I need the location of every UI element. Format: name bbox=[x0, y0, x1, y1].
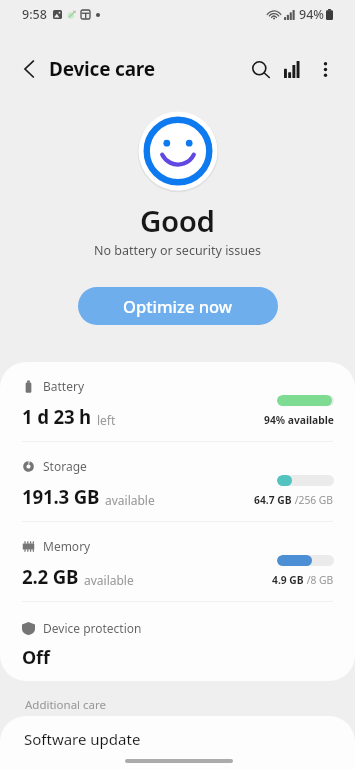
staticText: Storage bbox=[43, 458, 87, 474]
staticText: /8 GB bbox=[304, 573, 334, 587]
staticText: Good bbox=[140, 200, 215, 240]
staticText: 4.9 GB bbox=[272, 573, 304, 587]
button[interactable]: Storage bbox=[0, 442, 355, 521]
staticText: available bbox=[105, 492, 155, 508]
button[interactable]: Battery bbox=[0, 362, 355, 441]
staticText: Software update bbox=[24, 729, 141, 749]
staticText: Off bbox=[22, 645, 50, 670]
staticText: 64.7 GB bbox=[254, 493, 292, 507]
staticText: Device care bbox=[49, 56, 155, 82]
staticText: Additional care bbox=[25, 697, 107, 713]
staticText: Memory bbox=[43, 538, 91, 554]
button[interactable]: Software update bbox=[0, 716, 355, 769]
button[interactable]: Navigate up bbox=[6, 46, 52, 92]
staticText: 1 d 23 h bbox=[22, 404, 92, 429]
staticText: Device protection bbox=[43, 620, 142, 636]
button[interactable]: Search bbox=[246, 54, 276, 84]
button[interactable]: Usage history bbox=[276, 53, 308, 85]
staticText: 94% available bbox=[264, 413, 334, 427]
button[interactable]: Memory bbox=[0, 522, 355, 601]
button[interactable]: Device protection bbox=[0, 602, 355, 681]
button[interactable]: More options bbox=[308, 52, 342, 86]
staticText: available bbox=[84, 572, 134, 588]
staticText: 94% bbox=[299, 6, 324, 23]
staticText: Optimize now bbox=[123, 295, 233, 317]
staticText: No battery or security issues bbox=[94, 242, 262, 259]
staticText: left bbox=[97, 412, 116, 428]
staticText: 9:58 bbox=[22, 6, 47, 23]
button[interactable]: Optimize now bbox=[78, 287, 278, 325]
staticText: 191.3 GB bbox=[22, 484, 100, 509]
staticText: /256 GB bbox=[292, 493, 334, 507]
staticText: 2.2 GB bbox=[22, 564, 79, 589]
staticText: Battery bbox=[43, 378, 85, 394]
